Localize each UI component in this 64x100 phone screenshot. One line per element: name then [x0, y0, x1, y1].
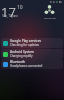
staticText: 10	[17, 4, 23, 11]
staticText: Android System	[10, 50, 35, 54]
staticText: Recycle tip	[44, 16, 56, 19]
staticText: Tue, 17 June	[2, 14, 18, 18]
button[interactable]: Google Play services	[1, 38, 63, 48]
staticText: Charging rapidly	[10, 54, 33, 58]
button[interactable]: Android System	[1, 49, 63, 59]
staticText: Bluetooth	[10, 60, 26, 64]
staticText: 17	[1, 3, 16, 21]
staticText: Headphones connected	[10, 64, 43, 68]
staticText: Checking for updates	[10, 43, 39, 47]
button[interactable]: Recycling widget	[45, 6, 54, 15]
staticText: Google Play services	[10, 39, 42, 43]
button[interactable]: Bluetooth	[1, 59, 63, 69]
